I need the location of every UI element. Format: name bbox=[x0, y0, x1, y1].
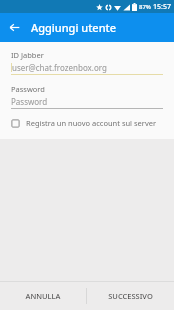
staticText: Registra un nuovo account sul server bbox=[26, 118, 157, 128]
staticText: SUCCESSIVO bbox=[108, 291, 153, 301]
staticText: Password bbox=[11, 84, 45, 94]
staticText: Password bbox=[11, 96, 48, 107]
button[interactable]: SUCCESSIVO bbox=[87, 282, 174, 310]
staticText: 15:57 bbox=[153, 2, 171, 12]
button[interactable]: Registra un nuovo account sul server bbox=[11, 118, 163, 128]
staticText: 87% bbox=[139, 3, 151, 11]
staticText: user@chat.frozenbox.org bbox=[12, 62, 107, 73]
staticText: Aggiungi utente bbox=[31, 20, 117, 35]
staticText: ANNULLA bbox=[25, 291, 61, 301]
staticText: ID Jabber bbox=[11, 50, 44, 60]
button[interactable]: Indietro bbox=[0, 13, 29, 42]
button[interactable]: ANNULLA bbox=[0, 282, 86, 310]
